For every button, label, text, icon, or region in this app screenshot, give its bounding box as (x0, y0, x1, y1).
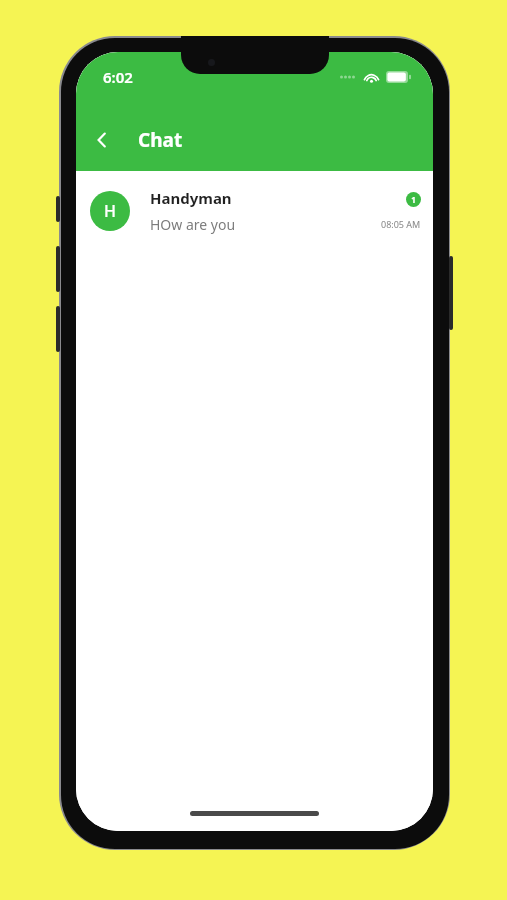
staticText: 1 (411, 194, 416, 205)
staticText: Chat (138, 127, 183, 153)
staticText: Handyman (150, 188, 232, 208)
staticText: 08:05 AM (381, 218, 421, 230)
staticText: HOw are you (150, 215, 236, 234)
staticText: H (104, 200, 116, 222)
staticText: 6:02 (103, 67, 133, 87)
button[interactable]: H (76, 171, 433, 251)
button[interactable]: Back (82, 120, 122, 160)
